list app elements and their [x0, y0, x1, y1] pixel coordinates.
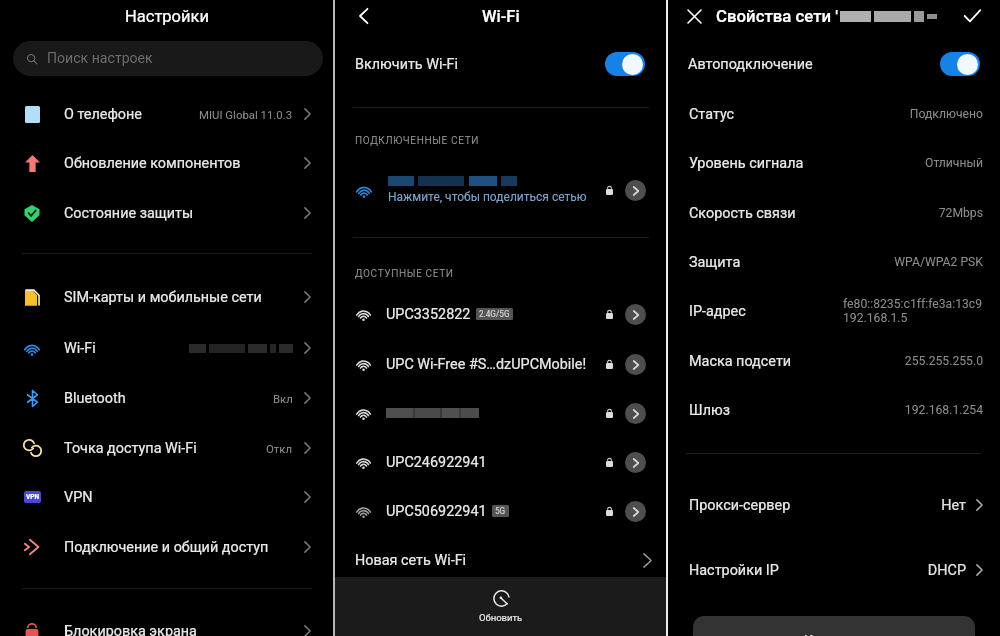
button[interactable]: Network details [625, 180, 646, 201]
button[interactable]: Настройки IP [668, 546, 1000, 594]
button[interactable]: Нажмите, чтобы поделиться сетью [335, 165, 666, 215]
button[interactable]: Включить Wi-Fi [335, 40, 666, 88]
staticText: Маска подсети [689, 353, 792, 370]
staticText: MIUI Global 11.0.3 [199, 108, 293, 121]
staticText: Уровень сигнала [689, 155, 804, 172]
staticText: Нажмите, чтобы поделиться сетью [388, 190, 587, 204]
button[interactable]: Маска подсети [668, 337, 1000, 385]
button[interactable]: Toggle [940, 52, 980, 76]
button[interactable]: UPC506922941 [335, 487, 666, 535]
staticText: Шлюз [689, 402, 731, 419]
staticText: fe80::8235:c1ff:fe3a:13c9 192.168.1.5 [843, 297, 983, 325]
staticText: UPC506922941 [386, 503, 487, 520]
staticText: Точка доступа Wi-Fi [64, 440, 197, 457]
button[interactable]: Network details [625, 452, 646, 473]
button[interactable]: Обновить [335, 577, 666, 636]
staticText: 255.255.255.0 [904, 354, 983, 368]
staticText: Отличный [925, 156, 983, 170]
button[interactable]: Новая сеть Wi-Fi [335, 537, 666, 583]
staticText: О телефоне [64, 106, 142, 123]
button[interactable]: Блокировка экрана [0, 607, 333, 636]
staticText: Обновление компонентов [64, 155, 241, 172]
button[interactable]: Прокси-сервер [668, 481, 1000, 529]
staticText: Включить Wi-Fi [355, 56, 458, 73]
button[interactable]: Обновление компонентов [0, 139, 333, 187]
staticText: ДОСТУПНЫЕ СЕТИ [355, 268, 454, 280]
button[interactable]: UPC Wi-Free #S…dzUPCMobile! [335, 340, 666, 388]
staticText: Нет [941, 497, 966, 514]
button[interactable]: UPC3352822 [335, 290, 666, 338]
staticText: 72Mbps [938, 206, 983, 220]
staticText: ПОДКЛЮЧЕННЫЕ СЕТИ [355, 135, 480, 147]
staticText: Статус [689, 106, 735, 123]
staticText: 192.168.1.254 [904, 403, 983, 417]
staticText: Подключено [909, 107, 983, 121]
button[interactable]: Back [352, 4, 376, 28]
staticText: Вкл [273, 392, 293, 405]
button[interactable]: Уровень сигнала [668, 139, 1000, 187]
staticText: UPC Wi-Free #S…dzUPCMobile! [386, 356, 587, 373]
staticText: Настройки IP [689, 562, 779, 579]
staticText: Свойства сети ' [716, 6, 839, 26]
button[interactable]: Network details [625, 501, 646, 522]
button[interactable]: VPN [0, 473, 333, 521]
button[interactable]: Шлюз [668, 386, 1000, 434]
button[interactable]: IP-адрес [668, 287, 1000, 335]
staticText: Блокировка экрана [64, 623, 197, 636]
button[interactable]: О телефоне [0, 90, 333, 138]
button[interactable]: Network details [335, 389, 666, 437]
button[interactable]: Save [960, 4, 984, 28]
staticText: Подключение и общий доступ [64, 539, 269, 556]
staticText: Состояние защиты [64, 205, 194, 222]
button[interactable]: Точка доступа Wi-Fi [0, 424, 333, 472]
staticText: WPA/WPA2 PSK [894, 255, 983, 269]
staticText: Автоподключение [688, 56, 813, 73]
button[interactable]: Подключение и общий доступ [0, 523, 333, 571]
button[interactable]: Изменить [693, 616, 975, 636]
button[interactable]: Автоподключение [668, 40, 1000, 88]
staticText: Прокси-сервер [689, 497, 791, 514]
button[interactable]: Wi-Fi [0, 324, 333, 372]
button[interactable]: Network details [625, 403, 646, 424]
staticText: Поиск настроек [47, 50, 153, 67]
staticText: 2.4G/5G [479, 309, 510, 319]
button[interactable]: Статус [668, 90, 1000, 138]
button[interactable]: UPC246922941 [335, 438, 666, 486]
button[interactable]: Network details [625, 354, 646, 375]
staticText: SIM-карты и мобильные сети [64, 289, 262, 306]
staticText: VPN [64, 489, 93, 506]
button[interactable]: Состояние защиты [0, 189, 333, 237]
staticText: 5G [495, 506, 506, 516]
staticText: Настройки [125, 7, 209, 26]
button[interactable]: Bluetooth [0, 374, 333, 422]
staticText: Обновить [479, 612, 523, 623]
staticText: Откл [266, 442, 293, 455]
button[interactable]: SIM-карты и мобильные сети [0, 273, 333, 321]
staticText: VPN [26, 493, 40, 501]
staticText: Новая сеть Wi-Fi [355, 552, 467, 569]
staticText: Защита [689, 254, 741, 271]
staticText: Wi-Fi [482, 7, 520, 26]
button[interactable]: Toggle [605, 52, 645, 76]
staticText: Wi-Fi [64, 340, 96, 357]
button[interactable]: Close [682, 4, 706, 28]
staticText: UPC3352822 [386, 306, 471, 323]
button[interactable]: Скорость связи [668, 189, 1000, 237]
staticText: Изменить [804, 632, 865, 636]
staticText: Скорость связи [689, 205, 796, 222]
button[interactable]: Поиск настроек [13, 41, 323, 76]
staticText: DHCP [927, 562, 966, 579]
button[interactable]: Защита [668, 238, 1000, 286]
staticText: IP-адрес [689, 303, 746, 320]
staticText: Bluetooth [64, 390, 126, 407]
button[interactable]: Network details [625, 304, 646, 325]
staticText: UPC246922941 [386, 454, 487, 471]
